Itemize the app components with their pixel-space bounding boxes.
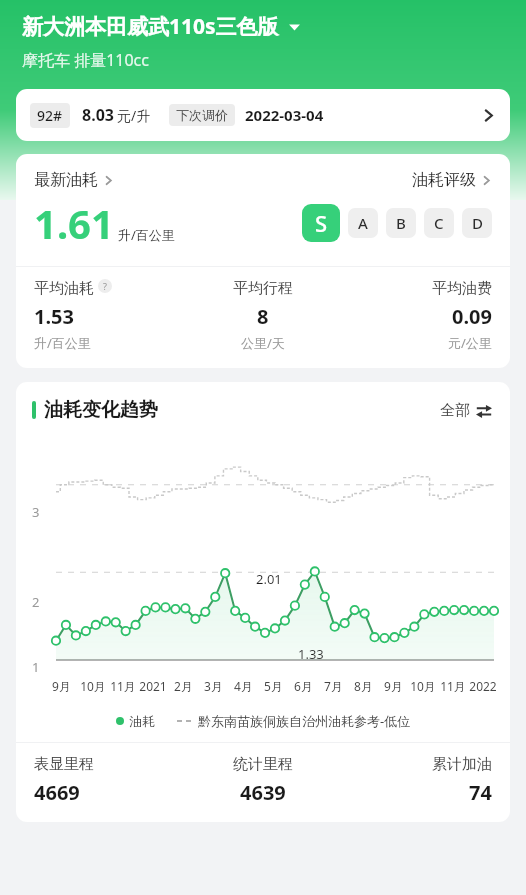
staticText: 元/升 bbox=[117, 106, 151, 125]
staticText: 2022 bbox=[469, 678, 497, 694]
staticText: 8 bbox=[257, 303, 269, 330]
staticText: 2.01 bbox=[256, 570, 282, 588]
button[interactable]: D bbox=[462, 208, 492, 238]
staticText: 平均油耗 bbox=[34, 279, 94, 298]
staticText: 2月 bbox=[174, 678, 193, 694]
staticText: 2 bbox=[32, 593, 40, 611]
button[interactable]: 最新油耗 bbox=[34, 170, 114, 190]
staticText: 9月 bbox=[52, 678, 71, 694]
staticText: 黔东南苗族侗族自治州油耗参考-低位 bbox=[198, 712, 411, 730]
staticText: 油耗 bbox=[129, 713, 155, 729]
staticText: 4639 bbox=[240, 779, 286, 806]
staticText: 92# bbox=[37, 106, 63, 125]
staticText: 累计加油 bbox=[432, 755, 492, 774]
staticText: 2021 bbox=[139, 678, 167, 694]
staticText: 平均行程 bbox=[233, 279, 293, 298]
staticText: 摩托车 排量110cc bbox=[22, 49, 149, 71]
staticText: 6月 bbox=[294, 678, 313, 694]
button[interactable]: 新大洲本田威武110s三色版 bbox=[22, 12, 301, 41]
staticText: 8.03 bbox=[82, 104, 114, 126]
staticText: 新大洲本田威武110s三色版 bbox=[22, 12, 279, 41]
staticText: 11月 bbox=[110, 678, 136, 694]
staticText: 11月 bbox=[440, 678, 466, 694]
staticText: 平均油费 bbox=[432, 279, 492, 298]
staticText: 5月 bbox=[264, 678, 283, 694]
staticText: 1.61 bbox=[34, 196, 114, 250]
staticText: 油耗评级 bbox=[412, 170, 476, 190]
staticText: 最新油耗 bbox=[34, 170, 98, 190]
staticText: 表显里程 bbox=[34, 755, 94, 774]
staticText: 0.09 bbox=[452, 303, 492, 330]
staticText: C bbox=[434, 213, 444, 233]
staticText: 9月 bbox=[384, 678, 403, 694]
staticText: 10月 bbox=[410, 678, 436, 694]
staticText: 1.53 bbox=[34, 303, 74, 330]
staticText: 1 bbox=[32, 658, 40, 676]
staticText: 统计里程 bbox=[233, 755, 293, 774]
staticText: 2022-03-04 bbox=[245, 105, 324, 125]
staticText: 7月 bbox=[324, 678, 343, 694]
staticText: 1.33 bbox=[298, 645, 324, 663]
staticText: 油耗变化趋势 bbox=[44, 398, 158, 422]
button[interactable]: 全部 bbox=[440, 401, 492, 420]
staticText: 8月 bbox=[354, 678, 373, 694]
staticText: ? bbox=[103, 280, 107, 292]
staticText: 下次调价 bbox=[176, 107, 228, 123]
button[interactable]: Help bbox=[98, 279, 112, 293]
staticText: 3 bbox=[32, 503, 40, 521]
staticText: 元/公里 bbox=[448, 334, 492, 352]
staticText: A bbox=[358, 213, 368, 233]
other: Select vehicle bbox=[288, 20, 301, 33]
staticText: S bbox=[315, 208, 328, 238]
button[interactable]: B bbox=[386, 208, 416, 238]
staticText: 升/百公里 bbox=[118, 226, 175, 244]
staticText: D bbox=[472, 213, 483, 233]
button[interactable]: S bbox=[302, 204, 340, 242]
staticText: 4669 bbox=[34, 779, 80, 806]
button[interactable]: 油耗评级 bbox=[412, 170, 492, 190]
staticText: B bbox=[396, 213, 406, 233]
staticText: 3月 bbox=[204, 678, 223, 694]
staticText: 升/百公里 bbox=[34, 334, 91, 352]
button[interactable]: A bbox=[348, 208, 378, 238]
button[interactable]: 92# bbox=[16, 89, 510, 141]
staticText: 74 bbox=[469, 779, 492, 806]
other: Switch range bbox=[476, 403, 492, 419]
button[interactable]: C bbox=[424, 208, 454, 238]
staticText: 全部 bbox=[440, 401, 470, 420]
staticText: 公里/天 bbox=[241, 334, 285, 352]
staticText: 4月 bbox=[234, 678, 253, 694]
staticText: 10月 bbox=[80, 678, 106, 694]
